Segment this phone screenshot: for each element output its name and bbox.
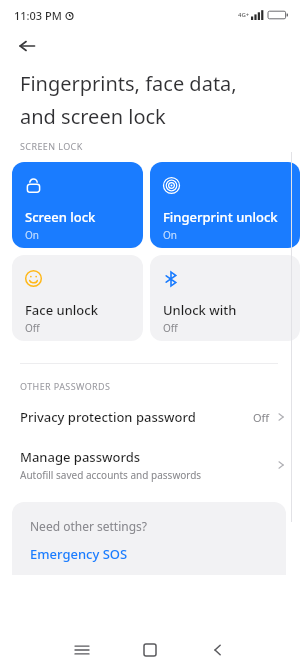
staticText: 4G+ [238, 11, 250, 19]
staticText: Off [25, 321, 40, 335]
staticText: Unlock with Bluetooth device [163, 301, 296, 319]
button[interactable]: Face unlock [12, 255, 143, 341]
staticText: Emergency SOS [30, 545, 128, 563]
button[interactable]: Need other settings? [12, 502, 286, 575]
staticText: Manage passwords [20, 448, 141, 466]
button[interactable]: Back [10, 30, 44, 62]
staticText: Fingerprint unlock [163, 208, 278, 226]
button[interactable]: Back [198, 633, 238, 666]
staticText: and screen lock [20, 103, 166, 130]
staticText: Privacy protection password [20, 408, 196, 426]
button[interactable]: Screen lock [12, 162, 143, 248]
staticText: OTHER PASSWORDS [20, 380, 111, 392]
staticText: Need other settings? [30, 518, 148, 534]
staticText: On [163, 228, 177, 242]
button[interactable]: Unlock with Bluetooth device [150, 255, 300, 341]
staticText: Off [163, 321, 178, 335]
button[interactable]: Manage passwords [0, 448, 300, 482]
staticText: Fingerprints, face data, [20, 70, 237, 97]
staticText: 11:03 PM [14, 8, 62, 23]
button[interactable]: Fingerprint unlock [150, 162, 300, 248]
button[interactable]: Home [130, 633, 170, 666]
staticText: Screen lock [25, 208, 96, 226]
staticText: Face unlock [25, 301, 98, 319]
button[interactable]: Privacy protection password [0, 404, 300, 430]
staticText: SCREEN LOCK [20, 140, 83, 152]
button[interactable]: Recent apps [62, 633, 102, 666]
staticText: Off [253, 410, 270, 425]
staticText: Autofill saved accounts and passwords [20, 468, 202, 482]
staticText: On [25, 228, 39, 242]
